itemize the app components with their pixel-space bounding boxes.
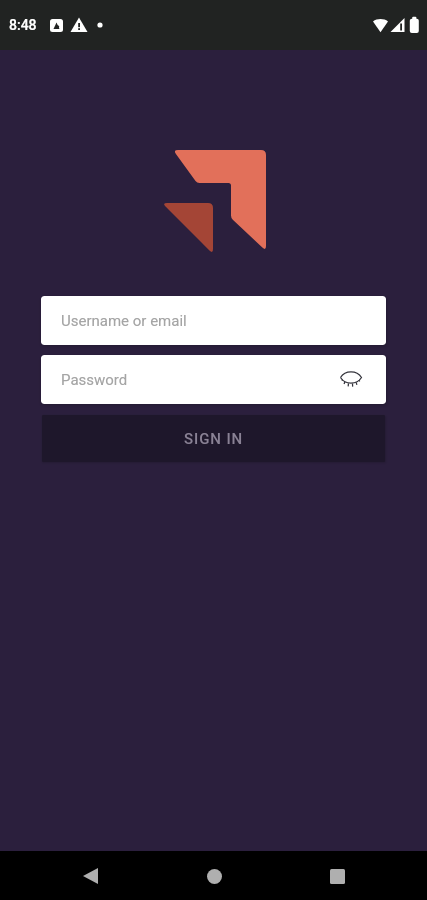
button[interactable]: Show password bbox=[338, 366, 366, 394]
button[interactable]: SIGN IN bbox=[42, 415, 385, 462]
button[interactable]: Home bbox=[190, 852, 238, 900]
button[interactable]: Password bbox=[41, 355, 386, 404]
staticText: 8:48 bbox=[9, 17, 37, 33]
button[interactable]: Back bbox=[66, 852, 114, 900]
staticText: Password bbox=[61, 371, 128, 389]
button[interactable]: Username or email bbox=[41, 296, 386, 345]
staticText: Username or email bbox=[61, 312, 187, 330]
staticText: SIGN IN bbox=[184, 430, 244, 448]
button[interactable]: Recents bbox=[313, 852, 361, 900]
